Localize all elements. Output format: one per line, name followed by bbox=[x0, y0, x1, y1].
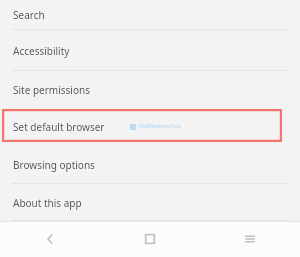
button[interactable]: Site permissions bbox=[0, 71, 300, 108]
staticText: Search bbox=[13, 8, 45, 22]
staticText: Browsing options bbox=[13, 158, 95, 172]
button[interactable]: Set default browser bbox=[0, 108, 300, 145]
button[interactable]: Search bbox=[0, 0, 300, 30]
button[interactable]: Recent apps bbox=[200, 221, 300, 257]
staticText: Accessibility bbox=[13, 44, 70, 58]
button[interactable]: About this app bbox=[0, 184, 300, 221]
button[interactable]: Accessibility bbox=[0, 30, 300, 71]
staticText: TheWindowsClub bbox=[138, 123, 181, 130]
button[interactable]: Browsing options bbox=[0, 145, 300, 184]
staticText: About this app bbox=[13, 196, 82, 210]
button[interactable]: Back bbox=[0, 221, 100, 257]
staticText: Set default browser bbox=[13, 120, 105, 134]
staticText: Site permissions bbox=[13, 83, 90, 97]
button[interactable]: Home bbox=[100, 221, 200, 257]
